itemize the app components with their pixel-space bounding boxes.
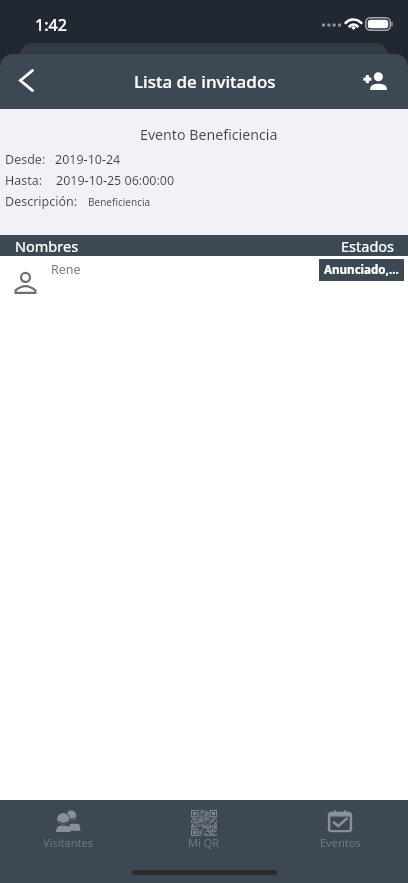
staticText: Beneficiencia [88,195,151,209]
staticText: 2019-10-25 06:00:00 [56,172,175,189]
button[interactable]: Mi QR [136,800,272,850]
staticText: Evento Beneficiencia [140,125,278,144]
staticText: Nombres [15,236,79,256]
staticText: Anunciado,... [324,262,399,278]
staticText: Estados [341,236,395,256]
staticText: Hasta: [5,172,43,189]
button[interactable]: Back [0,54,48,109]
button[interactable]: Rene [0,256,408,312]
staticText: Lista de invitados [134,70,276,93]
staticText: Rene [51,261,81,278]
staticText: Visitantes [43,835,93,850]
staticText: Descripción: [5,193,78,210]
button[interactable]: Visitantes [0,800,136,850]
staticText: Eventos [320,835,361,850]
staticText: Desde: [5,151,46,168]
staticText: 1:42 [35,14,67,36]
button[interactable]: Add guest [360,54,408,109]
staticText: 2019-10-24 [55,151,121,168]
button[interactable]: Eventos [272,800,408,850]
staticText: Mi QR [188,835,220,850]
